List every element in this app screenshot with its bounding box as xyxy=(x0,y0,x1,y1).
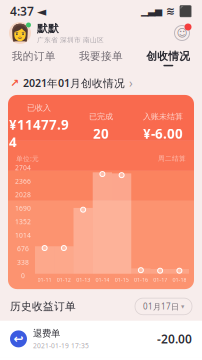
staticText: 2366 xyxy=(15,177,31,186)
staticText: 1690 xyxy=(15,204,31,213)
staticText: › xyxy=(129,75,133,91)
staticText: 1014 xyxy=(15,231,31,240)
staticText: 默默 xyxy=(37,22,59,35)
button[interactable]: 创收情况 xyxy=(135,46,202,70)
staticText: 周二结算 xyxy=(158,154,186,163)
staticText: 01-18 xyxy=(172,276,186,283)
staticText: 4:37 ◄ xyxy=(10,3,46,19)
staticText: 01-17 xyxy=(153,276,167,283)
button[interactable]: 01月17日 xyxy=(135,298,192,315)
staticText: ▁▃▅ xyxy=(141,6,162,16)
staticText: 👩 xyxy=(10,24,30,42)
button[interactable]: 我的订单 xyxy=(0,46,67,70)
staticText: 01-14 xyxy=(95,276,109,283)
staticText: 广东省 深圳市 南山区 xyxy=(37,36,104,44)
staticText: 历史收益订单 xyxy=(10,300,76,313)
staticText: ▾ xyxy=(181,303,184,310)
staticText: 我要接单 xyxy=(79,50,123,63)
staticText: 0 xyxy=(21,271,25,280)
staticText: 2704 xyxy=(15,163,31,172)
staticText: 676 xyxy=(17,244,29,253)
staticText: 2021年01月创收情况 xyxy=(23,76,125,90)
staticText: ¥-6.00 xyxy=(143,125,183,142)
button[interactable]: ↩ xyxy=(0,321,202,357)
staticText: ↩ xyxy=(13,332,23,346)
staticText: ↗ xyxy=(10,77,19,89)
staticText: 已完成 xyxy=(89,112,113,122)
staticText: 01-13 xyxy=(76,276,90,283)
staticText: 20 xyxy=(93,125,109,142)
staticText: 01-12 xyxy=(57,276,71,283)
staticText: 入账未结算 xyxy=(143,112,183,122)
staticText: 01月17日 xyxy=(143,301,179,312)
staticText: 2021-01-19 17:35 xyxy=(33,341,89,350)
button[interactable]: Messages xyxy=(171,22,193,44)
staticText: 已收入 xyxy=(27,103,51,113)
staticText: 1352 xyxy=(15,217,31,226)
staticText: ☺ xyxy=(176,27,187,39)
staticText: 2028 xyxy=(15,190,31,199)
staticText: 01-11 xyxy=(38,276,52,283)
staticText: 01-15 xyxy=(115,276,129,283)
button[interactable]: ↗ xyxy=(0,70,202,95)
staticText: ¥11477.94 xyxy=(9,116,69,151)
staticText: 01-16 xyxy=(134,276,148,283)
staticText: 退费单 xyxy=(33,328,60,339)
staticText: 338 xyxy=(17,258,29,267)
staticText: ⬛ xyxy=(179,5,192,17)
staticText: -20.00 xyxy=(157,331,192,347)
staticText: 创收情况 xyxy=(146,50,190,63)
button[interactable]: 我要接单 xyxy=(67,46,135,70)
staticText: ≋ xyxy=(162,5,179,17)
staticText: 单位:元 xyxy=(16,154,39,163)
staticText: 我的订单 xyxy=(12,50,56,63)
